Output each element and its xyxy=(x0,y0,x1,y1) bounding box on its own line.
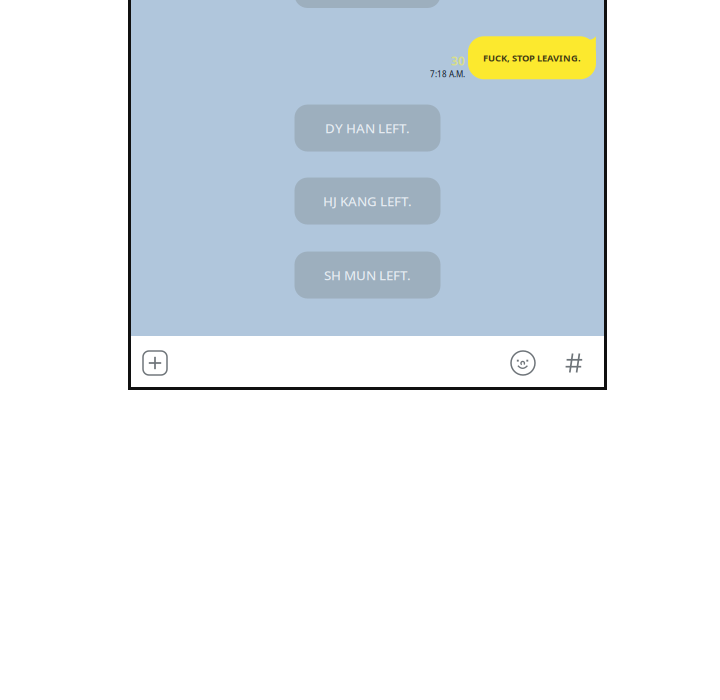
staticText: 7:18 A.M. xyxy=(430,69,465,79)
staticText: HJ KANG LEFT. xyxy=(323,192,412,210)
button[interactable]: Channels xyxy=(554,338,594,387)
button[interactable]: Add attachment xyxy=(136,338,174,388)
staticText: 30 xyxy=(451,53,465,69)
button[interactable]: Stickers xyxy=(504,338,542,388)
staticText: SH MUN LEFT. xyxy=(324,266,411,284)
staticText: FUCK, STOP LEAVING. xyxy=(483,52,581,64)
staticText: DY HAN LEFT. xyxy=(325,119,410,137)
